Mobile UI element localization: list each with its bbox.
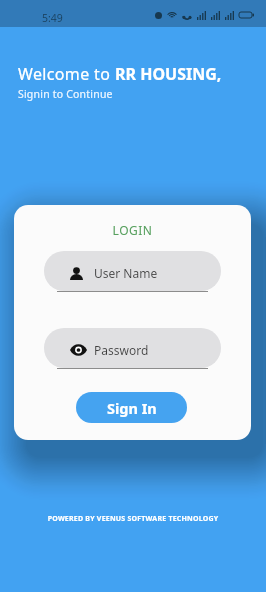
staticText: 5:49	[42, 11, 63, 25]
staticText: Signin to Continue	[18, 87, 113, 101]
button[interactable]: Password	[44, 328, 221, 370]
staticText: Sign In	[107, 398, 157, 418]
staticText: RR HOUSING,	[115, 63, 222, 85]
button[interactable]: Sign In	[76, 392, 187, 423]
staticText: LOGIN	[14, 222, 251, 238]
staticText: Password	[94, 342, 149, 358]
staticText: Welcome to	[18, 63, 115, 85]
staticText: POWERED BY VEENUS SOFTWARE TECHNOLOGY	[0, 514, 266, 524]
staticText: User Name	[94, 265, 158, 281]
button[interactable]: User Name	[44, 251, 221, 293]
